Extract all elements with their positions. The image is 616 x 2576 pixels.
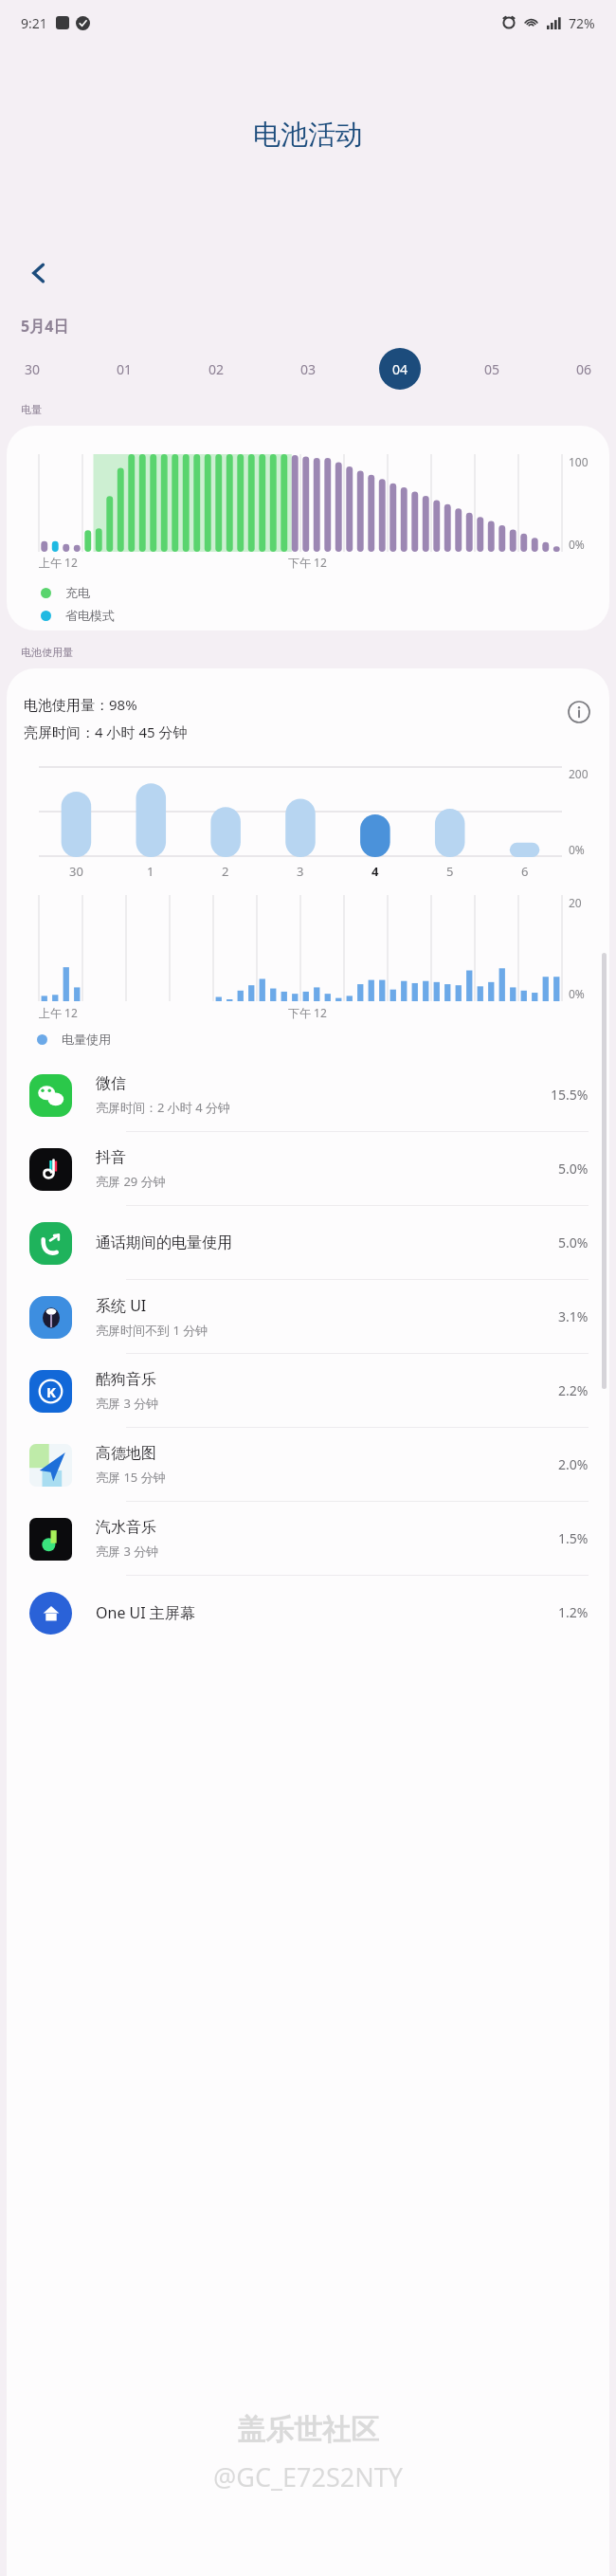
staticText: 0%: [569, 842, 585, 857]
staticText: K: [46, 1382, 56, 1401]
button[interactable]: Info: [562, 695, 596, 729]
staticText: 亮屏 3 分钟: [96, 1543, 159, 1560]
button[interactable]: 30: [11, 348, 53, 390]
staticText: 03: [300, 360, 317, 378]
staticText: 72%: [569, 14, 595, 32]
staticText: 电量使用: [62, 1032, 111, 1047]
staticText: 06: [576, 360, 592, 378]
staticText: 上午 12: [39, 1005, 78, 1020]
staticText: One UI 主屏幕: [96, 1602, 195, 1623]
staticText: 高德地图: [96, 1444, 156, 1463]
button[interactable]: 02: [195, 348, 237, 390]
staticText: 2.2%: [558, 1381, 589, 1399]
button[interactable]: 03: [287, 348, 329, 390]
staticText: 亮屏时间：4 小时 45 分钟: [24, 722, 188, 741]
staticText: 上午 12: [39, 555, 78, 570]
button[interactable]: 汽水音乐: [7, 1502, 609, 1575]
staticText: 电池使用量: [21, 646, 73, 659]
staticText: 05: [484, 360, 500, 378]
button[interactable]: 系统 UI: [7, 1280, 609, 1353]
staticText: 盖乐世社区: [237, 2412, 379, 2448]
button[interactable]: 01: [103, 348, 145, 390]
button[interactable]: 06: [563, 348, 605, 390]
button[interactable]: Back: [13, 247, 64, 299]
staticText: 04: [392, 360, 408, 378]
staticText: 100: [569, 454, 589, 469]
staticText: 3.1%: [558, 1307, 589, 1325]
staticText: 微信: [96, 1074, 126, 1093]
staticText: 电量: [21, 403, 42, 416]
staticText: 5.0%: [558, 1160, 589, 1178]
staticText: 亮屏时间不到 1 分钟: [96, 1322, 208, 1339]
staticText: 30: [69, 863, 83, 880]
button[interactable]: 05: [471, 348, 513, 390]
staticText: 4: [371, 863, 379, 880]
staticText: 充电: [65, 585, 90, 600]
staticText: 亮屏 15 分钟: [96, 1469, 166, 1486]
staticText: 系统 UI: [96, 1295, 147, 1316]
staticText: 酷狗音乐: [96, 1370, 156, 1389]
staticText: 6: [521, 863, 529, 880]
staticText: 下午 12: [288, 555, 327, 570]
staticText: 5: [446, 863, 454, 880]
staticText: 02: [208, 360, 225, 378]
button[interactable]: 微信: [7, 1058, 609, 1131]
staticText: 下午 12: [288, 1005, 327, 1020]
staticText: 通话期间的电量使用: [96, 1233, 232, 1252]
staticText: 5月4日: [21, 316, 69, 337]
staticText: 5.0%: [558, 1233, 589, 1251]
staticText: 01: [117, 360, 133, 378]
staticText: 0%: [569, 986, 585, 1001]
staticText: 3: [297, 863, 304, 880]
staticText: 抖音: [96, 1148, 126, 1167]
button[interactable]: One UI 主屏幕: [7, 1576, 609, 1649]
button[interactable]: K: [7, 1354, 609, 1427]
staticText: 亮屏 29 分钟: [96, 1173, 166, 1190]
staticText: 电池活动: [0, 118, 616, 153]
staticText: 1.5%: [558, 1529, 589, 1547]
staticText: 9:21: [21, 14, 47, 32]
staticText: 省电模式: [65, 608, 115, 623]
staticText: 20: [569, 895, 582, 910]
staticText: 2: [222, 863, 229, 880]
staticText: @GC_E72S2NTY: [213, 2459, 403, 2494]
staticText: 汽水音乐: [96, 1518, 156, 1537]
staticText: 1: [147, 863, 154, 880]
staticText: 亮屏 3 分钟: [96, 1395, 159, 1412]
button[interactable]: 高德地图: [7, 1428, 609, 1501]
button[interactable]: 04: [379, 348, 421, 390]
staticText: 15.5%: [551, 1086, 589, 1104]
staticText: 200: [569, 766, 589, 781]
staticText: 电池使用量：98%: [24, 695, 137, 714]
staticText: 1.2%: [558, 1603, 589, 1621]
staticText: 2.0%: [558, 1455, 589, 1473]
button[interactable]: 通话期间的电量使用: [7, 1206, 609, 1279]
staticText: 亮屏时间：2 小时 4 分钟: [96, 1099, 231, 1116]
staticText: 0%: [569, 537, 585, 552]
button[interactable]: 100: [7, 426, 609, 630]
staticText: 30: [25, 360, 41, 378]
button[interactable]: 抖音: [7, 1132, 609, 1205]
